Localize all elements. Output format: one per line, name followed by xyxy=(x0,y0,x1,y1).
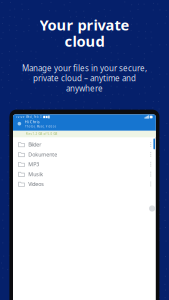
button[interactable]: Musik xyxy=(13,169,156,179)
staticText: Bilder xyxy=(28,141,41,148)
staticText: MP3 xyxy=(28,161,39,168)
staticText: Musik xyxy=(28,171,43,178)
staticText: private cloud – anytime and xyxy=(33,73,136,83)
button[interactable]: Dokumente xyxy=(13,149,156,159)
staticText: Wed, Feb 3 xyxy=(26,115,42,119)
staticText: Videos xyxy=(28,180,44,188)
staticText: cloud xyxy=(64,31,104,51)
staticText: Photos, Music, Videos xyxy=(25,125,56,128)
staticText: Hi Chris xyxy=(25,119,40,124)
staticText: Dokumente xyxy=(28,151,57,158)
staticText: Files 1.2 GB of 5.0 GB xyxy=(25,132,57,136)
staticText: anywhere xyxy=(66,83,103,94)
button[interactable]: Videos xyxy=(13,179,156,189)
staticText: 10:09 xyxy=(16,115,25,119)
button[interactable]: MP3 xyxy=(13,159,156,169)
button[interactable]: Add file xyxy=(149,205,155,212)
button[interactable]: Bilder xyxy=(13,139,156,149)
staticText: Your private xyxy=(39,15,129,34)
staticText: Manage your files in your secure, xyxy=(22,63,147,73)
